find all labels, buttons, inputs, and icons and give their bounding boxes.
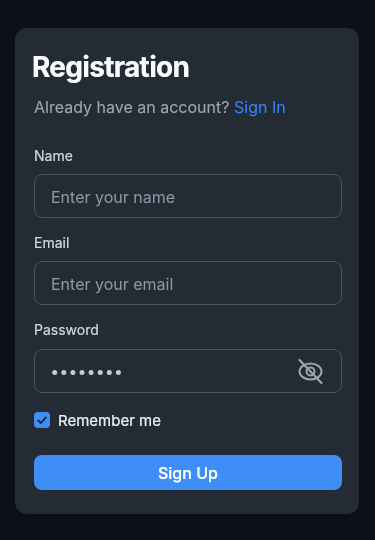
button[interactable] [34,349,342,393]
button[interactable]: Enter your email [34,261,342,305]
staticText: Enter your email [51,274,174,293]
button[interactable]: Remember me [34,411,161,429]
staticText: Name [34,147,73,164]
staticText: Password [34,321,99,338]
staticText: Registration [32,50,190,84]
button[interactable]: Sign In [234,97,286,116]
button[interactable]: Sign Up [34,455,342,490]
staticText: Enter your name [51,187,176,206]
button[interactable]: Enter your name [34,174,342,218]
staticText: Already have an account? [34,97,234,116]
staticText: Email [34,234,70,251]
staticText: Remember me [58,411,161,429]
staticText: Sign Up [158,463,218,482]
